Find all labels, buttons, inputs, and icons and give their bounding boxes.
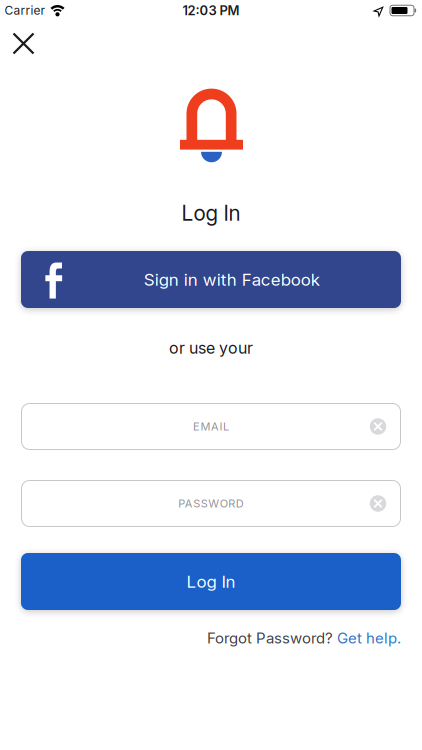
button[interactable]: Clear email (370, 418, 386, 435)
staticText: Log In (186, 571, 235, 592)
staticText: Carrier (4, 3, 45, 18)
staticText: PASSWORD (178, 497, 244, 510)
button[interactable]: Get help. (337, 629, 401, 647)
button[interactable]: Close (7, 27, 39, 59)
button[interactable]: Clear password (370, 495, 386, 512)
staticText: 12:03 PM (182, 3, 239, 18)
button[interactable]: Sign in with Facebook (21, 251, 401, 308)
button[interactable]: Password (21, 480, 401, 527)
button[interactable]: Log In (21, 553, 401, 610)
staticText: EMAIL (193, 420, 229, 433)
staticText: Get help. (337, 629, 401, 647)
staticText: or use your (169, 339, 253, 357)
staticText: Log In (181, 201, 240, 225)
staticText: Forgot Password? (207, 629, 337, 647)
staticText: Sign in with Facebook (144, 269, 320, 290)
button[interactable]: Email (21, 403, 401, 450)
